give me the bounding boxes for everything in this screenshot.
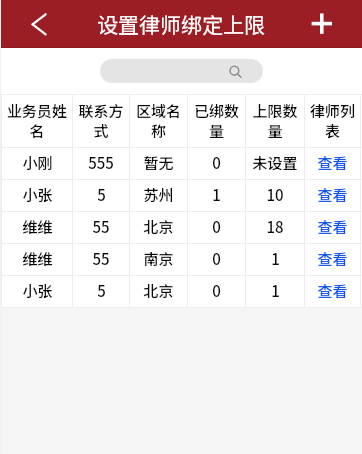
staticText: 已绑数量 [192,100,241,141]
staticText: 北京 [143,280,174,302]
staticText: 上限数量 [250,100,300,141]
staticText: 设置律师绑定上限 [97,9,265,39]
button[interactable]: 查看 [305,148,360,179]
staticText: 查看 [317,184,348,206]
staticText: 5 [97,280,106,302]
staticText: 1 [271,248,280,270]
staticText: 0 [212,280,221,302]
staticText: 维维 [22,248,53,270]
staticText: 查看 [317,216,348,238]
button[interactable]: 查看 [305,276,360,307]
staticText: 查看 [317,152,348,174]
staticText: 查看 [317,280,348,302]
staticText: 0 [212,216,221,238]
staticText: 未设置 [252,152,298,174]
staticText: 0 [212,152,221,174]
staticText: 小张 [22,280,53,302]
button[interactable]: Search [100,59,263,83]
staticText: 业务员姓名 [6,100,68,141]
button[interactable]: Back [0,0,56,48]
staticText: 联系方式 [77,100,125,141]
staticText: 北京 [143,216,174,238]
staticText: 10 [266,184,284,206]
staticText: 1 [212,184,221,206]
staticText: 555 [88,152,114,174]
button[interactable]: 查看 [305,244,360,275]
staticText: 55 [92,248,110,270]
button[interactable]: Add [304,0,362,48]
button[interactable]: 查看 [305,212,360,243]
staticText: 55 [92,216,110,238]
staticText: 律师列表 [309,100,356,141]
staticText: 0 [212,248,221,270]
staticText: 18 [266,216,284,238]
staticText: 维维 [22,216,53,238]
staticText: 1 [271,280,280,302]
button[interactable]: 查看 [305,180,360,211]
staticText: 区域名称 [134,100,183,141]
staticText: 苏州 [143,184,174,206]
staticText: 南京 [143,248,174,270]
staticText: 暂无 [143,152,174,174]
staticText: 小张 [22,184,53,206]
staticText: 小刚 [22,152,53,174]
staticText: 5 [97,184,106,206]
staticText: 查看 [317,248,348,270]
